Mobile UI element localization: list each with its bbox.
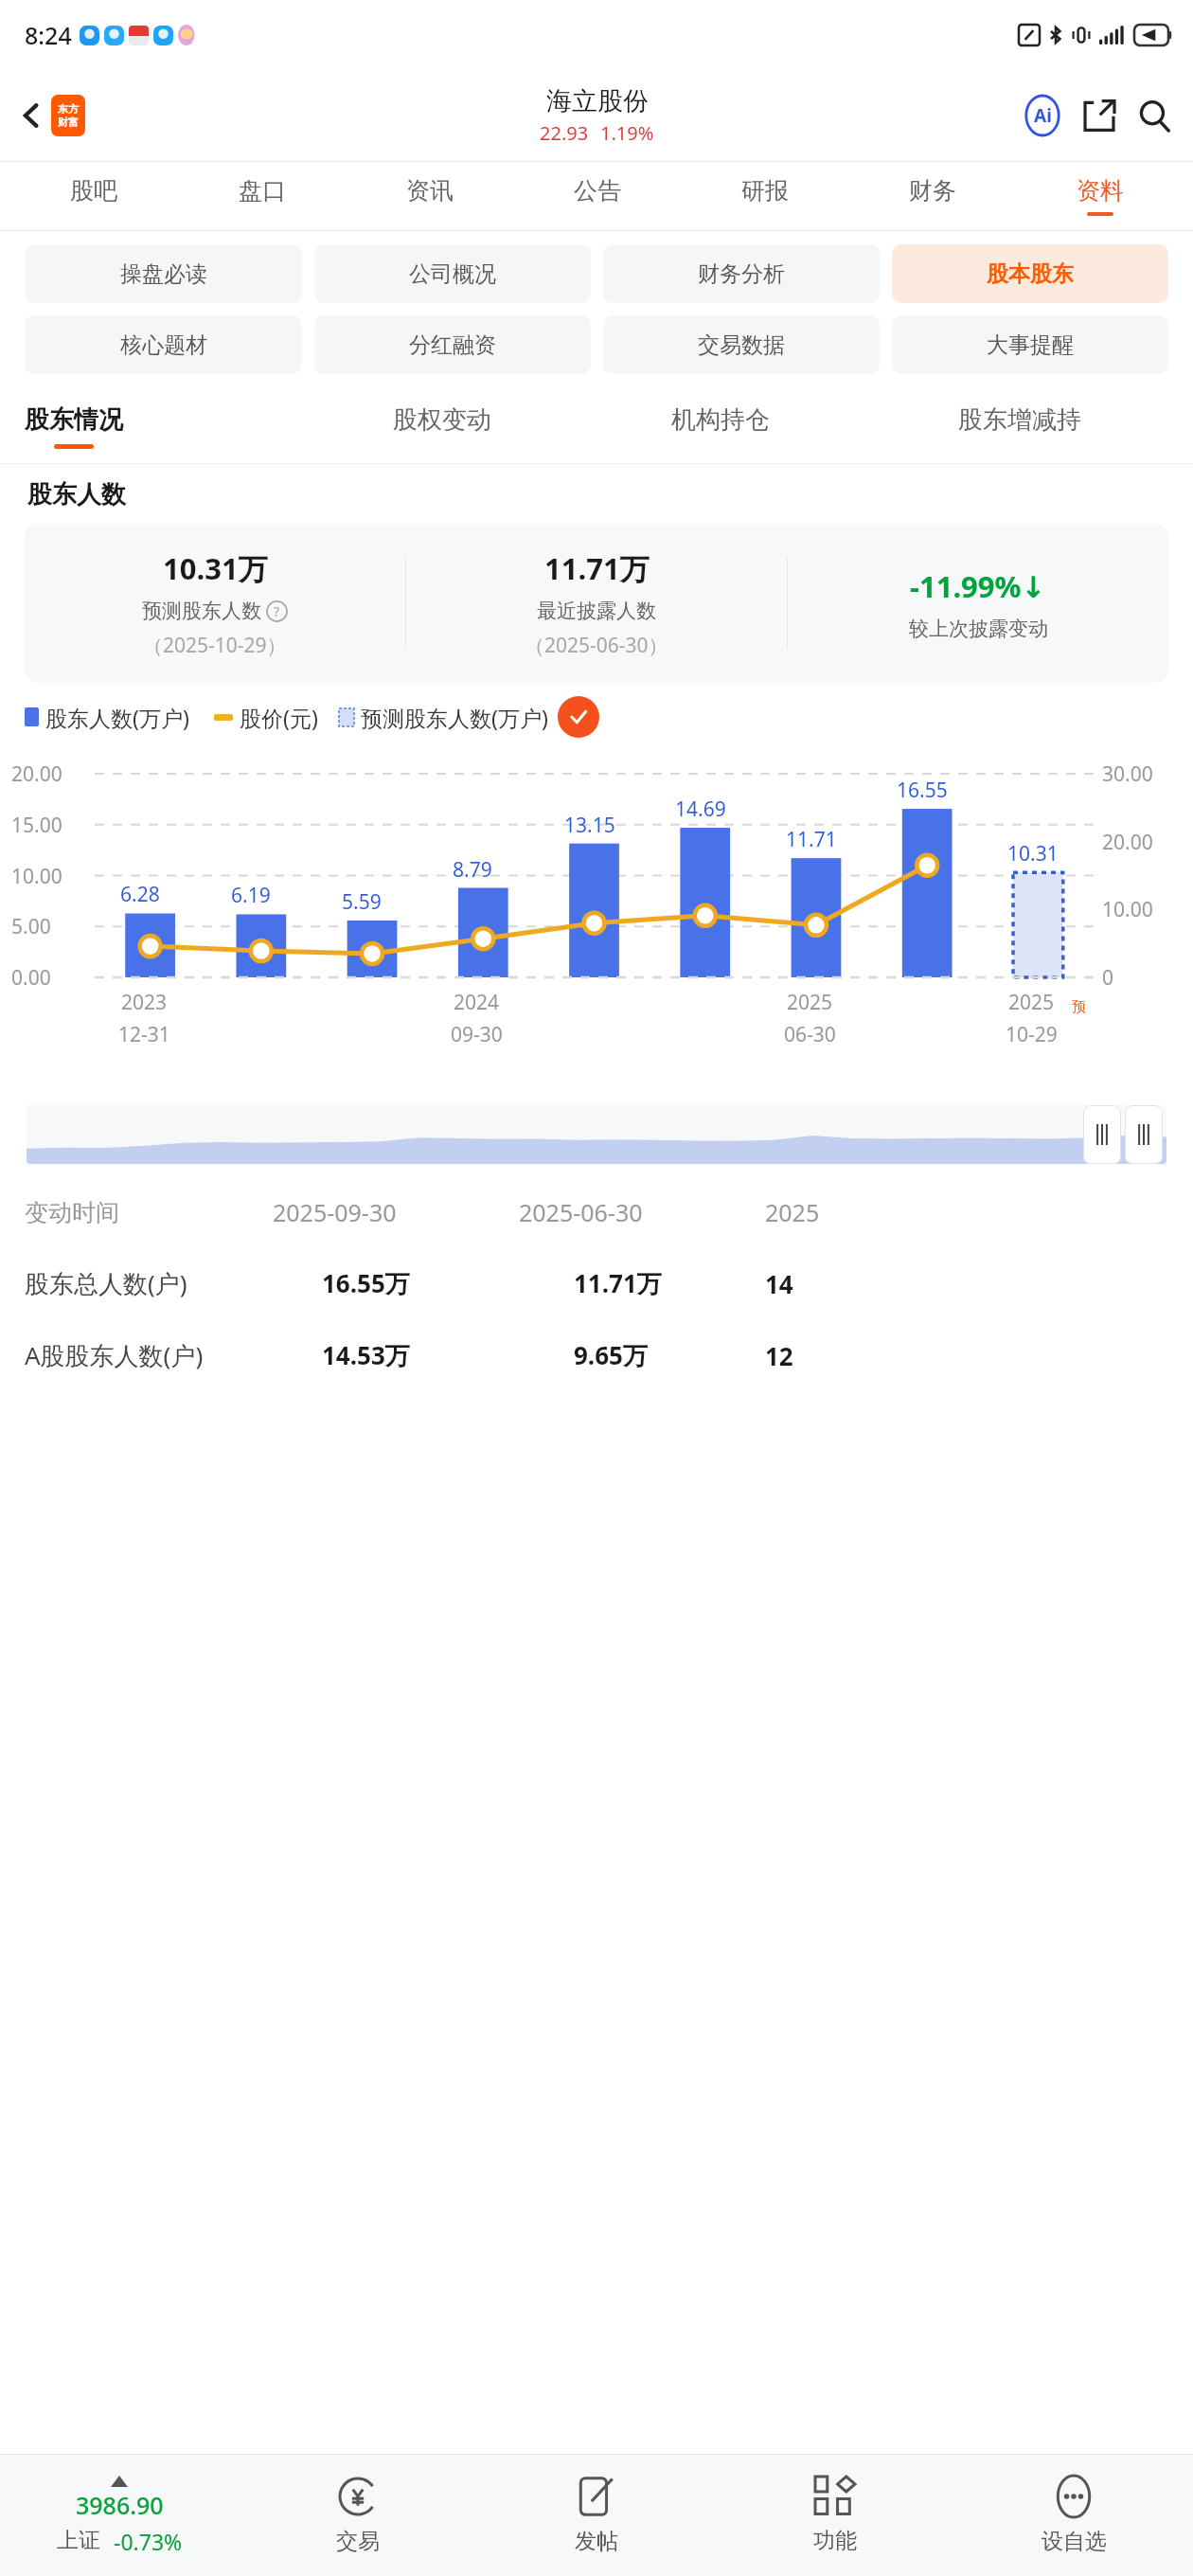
staticText: 股吧 xyxy=(70,176,117,206)
staticText: 操盘必读 xyxy=(120,260,207,288)
button[interactable]: A股股东人数(户) xyxy=(25,1319,1193,1391)
button[interactable]: Help xyxy=(266,600,288,622)
staticText: 0.00 xyxy=(11,964,51,992)
staticText: 财务分析 xyxy=(698,260,785,288)
staticText: 10.31万 xyxy=(163,548,268,588)
staticText: 股价(元) xyxy=(240,703,318,732)
staticText: 5.00 xyxy=(11,913,51,940)
staticText: 2025 xyxy=(765,1196,820,1228)
staticText: 上证 xyxy=(57,2527,100,2554)
staticText: 2023 xyxy=(121,989,168,1016)
staticText: 股东总人数(户) xyxy=(25,1266,273,1300)
staticText: 股权变动 xyxy=(393,404,491,436)
staticText: 11.71万 xyxy=(574,1266,662,1300)
button[interactable]: 操盘必读 xyxy=(25,244,302,303)
button[interactable]: Handle xyxy=(1125,1105,1163,1164)
button[interactable]: 股东情况 xyxy=(25,389,303,463)
button[interactable]: 股本股东 xyxy=(892,244,1168,303)
staticText: 14 xyxy=(765,1267,793,1300)
staticText: 13.15 xyxy=(564,812,615,839)
staticText: 2025 xyxy=(1008,989,1055,1016)
button[interactable]: 股东增减持 xyxy=(860,389,1180,463)
staticText: 16.55 xyxy=(897,777,948,804)
staticText: Ai xyxy=(1034,103,1052,128)
staticText: 22.93 xyxy=(540,120,589,146)
staticText: 大事提醒 xyxy=(987,331,1074,359)
staticText: 公告 xyxy=(574,176,621,206)
staticText: 股东增减持 xyxy=(958,404,1081,436)
button[interactable]: Search xyxy=(1132,94,1176,137)
staticText: 11.71 xyxy=(786,826,837,853)
staticText: 财富 xyxy=(58,116,79,129)
button[interactable]: 发帖 xyxy=(477,2455,716,2576)
staticText: 11.71万 xyxy=(544,548,650,588)
staticText: 预 xyxy=(1072,998,1086,1016)
staticText: 30.00 xyxy=(1102,760,1153,788)
staticText: 预测股东人数(万户) xyxy=(361,703,548,732)
staticText: 2024 xyxy=(454,989,500,1016)
button[interactable]: 交易数据 xyxy=(603,315,880,374)
staticText: 海立股份 xyxy=(546,85,649,117)
staticText: 资讯 xyxy=(406,176,454,206)
button[interactable]: 大事提醒 xyxy=(892,315,1168,374)
button[interactable]: 公告 xyxy=(513,162,681,230)
staticText: 16.55万 xyxy=(322,1266,410,1300)
button[interactable]: 资料 xyxy=(1016,162,1184,230)
staticText: 6.19 xyxy=(231,882,271,909)
staticText: 8.79 xyxy=(453,856,492,884)
staticText: （2025-06-30） xyxy=(525,632,668,659)
staticText: 2025-06-30 xyxy=(519,1196,765,1228)
button[interactable]: 3986.90 xyxy=(0,2455,239,2576)
staticText: 3986.90 xyxy=(76,2489,164,2521)
staticText: 12 xyxy=(765,1339,793,1372)
staticText: A股股东人数(户) xyxy=(25,1338,273,1372)
button[interactable]: 盘口 xyxy=(178,162,346,230)
button[interactable]: 分红融资 xyxy=(314,315,591,374)
button[interactable]: 财务 xyxy=(848,162,1016,230)
staticText: 研报 xyxy=(741,176,789,206)
staticText: 2025 xyxy=(787,989,833,1016)
staticText: （2025-10-29） xyxy=(143,632,287,659)
button[interactable]: 财务分析 xyxy=(603,244,880,303)
staticText: 12-31 xyxy=(118,1021,170,1048)
button[interactable]: 股吧 xyxy=(9,162,178,230)
staticText: 资料 xyxy=(1077,176,1124,206)
button[interactable]: 股权变动 xyxy=(303,389,581,463)
staticText: 14.69 xyxy=(675,796,726,823)
staticText: 14.53万 xyxy=(322,1338,410,1372)
staticText: 交易数据 xyxy=(698,331,785,359)
button[interactable]: Handle xyxy=(1083,1105,1121,1164)
staticText: 设自选 xyxy=(1042,2528,1107,2555)
button[interactable]: Confirm xyxy=(558,696,599,738)
button[interactable]: 资讯 xyxy=(346,162,513,230)
staticText: -0.73% xyxy=(114,2527,183,2556)
button[interactable]: 功能 xyxy=(716,2455,954,2576)
staticText: 10.00 xyxy=(11,863,62,890)
staticText: 20.00 xyxy=(11,760,62,788)
button[interactable]: 机构持仓 xyxy=(581,389,860,463)
staticText: 预测股东人数 xyxy=(142,599,261,623)
staticText: 分红融资 xyxy=(409,331,496,359)
button[interactable]: 核心题材 xyxy=(25,315,302,374)
staticText: 盘口 xyxy=(239,176,286,206)
button[interactable]: AI xyxy=(1021,94,1064,137)
staticText: 财务 xyxy=(909,176,956,206)
button[interactable]: 研报 xyxy=(681,162,848,230)
button[interactable]: 公司概况 xyxy=(314,244,591,303)
button[interactable]: 股东总人数(户) xyxy=(25,1247,1193,1319)
staticText: 06-30 xyxy=(784,1021,836,1048)
staticText: 5.59 xyxy=(342,888,382,916)
staticText: 20.00 xyxy=(1102,829,1153,856)
button[interactable]: Share xyxy=(1077,94,1121,137)
staticText: 股本股东 xyxy=(987,260,1074,288)
staticText: 2025-09-30 xyxy=(273,1196,519,1228)
staticText: 10-29 xyxy=(1006,1021,1058,1048)
staticText: 机构持仓 xyxy=(671,404,770,436)
button[interactable]: 设自选 xyxy=(954,2455,1193,2576)
button[interactable]: Back xyxy=(15,95,85,136)
staticText: 较上次披露变动 xyxy=(909,617,1048,641)
button[interactable]: 交易 xyxy=(239,2455,477,2576)
staticText: 东方 xyxy=(58,102,79,116)
staticText: 9.65万 xyxy=(574,1338,648,1372)
staticText: 15.00 xyxy=(11,812,62,839)
